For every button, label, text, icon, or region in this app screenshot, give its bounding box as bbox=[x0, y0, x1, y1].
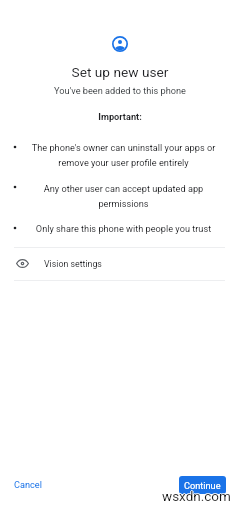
staticText: wsxdn.com bbox=[163, 488, 232, 504]
staticText: You've been added to this phone bbox=[0, 85, 240, 96]
staticText: Important: bbox=[0, 111, 240, 122]
button[interactable]: Vision settings bbox=[0, 248, 240, 279]
staticText: Continue bbox=[184, 480, 221, 491]
button[interactable]: Cancel bbox=[9, 476, 47, 493]
staticText: wsxdn.com bbox=[162, 488, 231, 504]
staticText: wsxdn.com bbox=[161, 488, 230, 504]
other: Vision settings bbox=[16, 259, 29, 268]
staticText: Cancel bbox=[14, 479, 42, 490]
staticText: Any other user can accept updated app pe… bbox=[30, 183, 217, 209]
button[interactable]: Continue bbox=[179, 476, 226, 494]
other: Account bbox=[112, 36, 128, 52]
staticText: wsxdn.com bbox=[162, 489, 231, 505]
staticText: Vision settings bbox=[44, 259, 102, 269]
staticText: Set up new user bbox=[0, 64, 240, 80]
staticText: Only share this phone with people you tr… bbox=[30, 223, 217, 234]
staticText: The phone's owner can uninstall your app… bbox=[30, 142, 217, 168]
staticText: wsxdn.com bbox=[162, 487, 231, 503]
